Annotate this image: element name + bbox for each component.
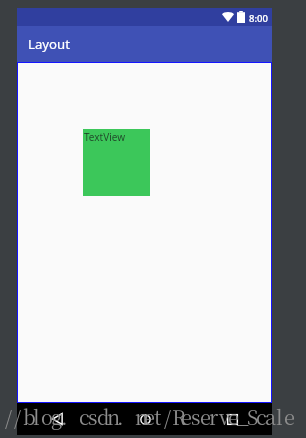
staticText: v (219, 402, 228, 431)
staticText: _ (237, 402, 246, 431)
staticText: r (209, 402, 218, 431)
staticText: n (107, 402, 116, 431)
staticText: t (154, 402, 162, 431)
staticText: b (23, 402, 32, 431)
staticText: d (97, 402, 106, 431)
staticText: s (191, 402, 200, 431)
staticText: e (228, 402, 237, 431)
staticText: s (88, 402, 97, 431)
staticText: g (51, 402, 60, 431)
staticText: c (79, 402, 88, 431)
staticText: Layout (28, 35, 70, 53)
staticText: l (276, 402, 283, 431)
staticText: / (14, 402, 22, 431)
button[interactable]: Back (45, 403, 69, 435)
staticText: c (256, 402, 265, 431)
staticText: / (5, 402, 13, 431)
staticText: e (200, 402, 209, 431)
staticText: R (172, 402, 181, 431)
staticText: / (164, 402, 172, 431)
staticText: e (181, 402, 190, 431)
staticText: TextView (84, 130, 126, 144)
staticText: 8:00 (249, 12, 268, 25)
staticText: a (265, 402, 274, 431)
staticText: o (41, 402, 50, 431)
staticText: . (61, 402, 68, 431)
staticText: l (33, 402, 40, 431)
button[interactable]: Home (133, 403, 157, 435)
staticText: n (135, 402, 144, 431)
staticText: S (247, 402, 256, 431)
button[interactable]: Recents (220, 403, 244, 435)
staticText: e (144, 402, 153, 431)
button[interactable]: TextView (83, 129, 150, 196)
staticText: . (117, 402, 124, 431)
staticText: e (284, 402, 293, 431)
